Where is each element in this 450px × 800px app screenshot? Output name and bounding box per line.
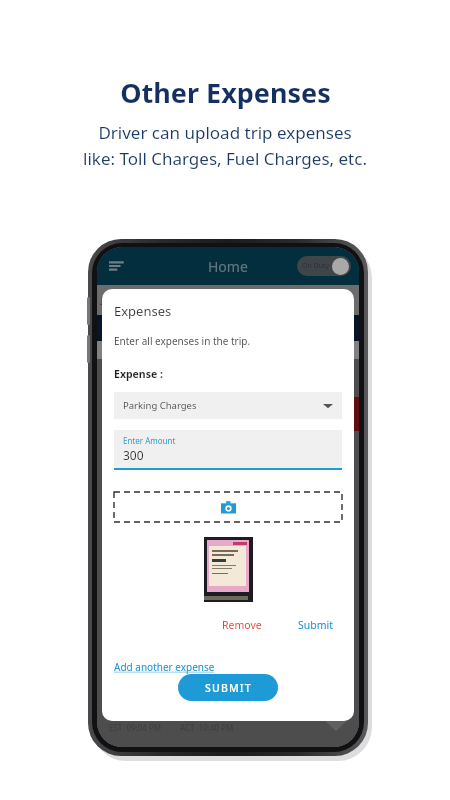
staticText: Home [208, 257, 248, 276]
staticText: like: Toll Charges, Fuel Charges, etc. [83, 147, 367, 170]
button[interactable]: SUBMIT [178, 674, 278, 701]
button[interactable]: Menu [107, 257, 125, 275]
staticText: Driver can upload trip expenses [98, 121, 352, 144]
staticText: 300 [123, 447, 144, 463]
button[interactable]: Remove [216, 616, 268, 634]
staticText: Expenses [114, 302, 172, 320]
button[interactable]: On Duty [297, 256, 351, 276]
button[interactable]: Add another expense [114, 660, 215, 674]
staticText: Expense : [114, 367, 163, 381]
staticText: Remove [222, 618, 262, 632]
button[interactable]: Parking Charges [114, 392, 342, 419]
staticText: On Duty [302, 261, 330, 271]
staticText: Jul 31 [332, 294, 355, 306]
staticText: Submit [298, 618, 334, 632]
staticText: SUBMIT [205, 681, 252, 695]
staticText: EST 09:04 PM [109, 722, 162, 733]
button[interactable]: Enter Amount [114, 430, 342, 468]
staticText: Parking Charges [123, 399, 197, 412]
staticText: Other Expenses [120, 74, 331, 111]
staticText: Add another expense [114, 660, 215, 674]
staticText: Enter all expenses in the trip. [114, 334, 251, 348]
staticText: Jul 30 [101, 294, 124, 306]
button[interactable]: Receipt photo [204, 537, 253, 602]
staticText: Enter Amount [123, 435, 176, 446]
staticText: ACT 10:40 PM [180, 722, 234, 733]
button[interactable]: Take photo [114, 492, 342, 522]
button[interactable]: Submit [292, 616, 340, 634]
